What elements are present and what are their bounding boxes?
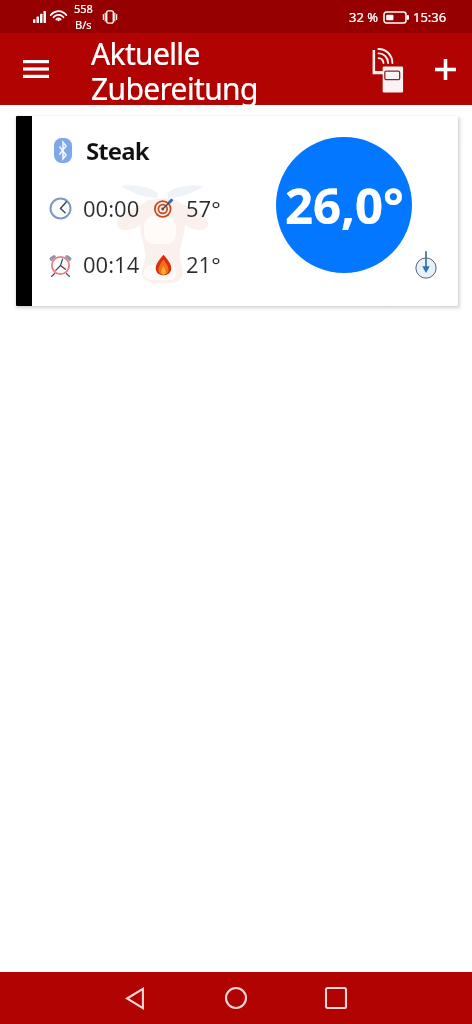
button[interactable]: Add bbox=[421, 41, 469, 97]
button[interactable]: Download bbox=[412, 249, 440, 277]
button[interactable]: Steak bbox=[16, 116, 458, 306]
staticText: 21° bbox=[186, 249, 221, 279]
staticText: Steak bbox=[86, 134, 149, 167]
staticText: 558 bbox=[74, 1, 93, 16]
staticText: B/s bbox=[75, 17, 92, 32]
staticText: 32 % bbox=[349, 8, 379, 26]
button[interactable]: Recents bbox=[312, 974, 360, 1022]
staticText: 26,0° bbox=[285, 172, 404, 239]
staticText: 00:00 bbox=[83, 193, 140, 223]
staticText: Aktuelle Zubereitung bbox=[91, 33, 352, 105]
staticText: 57° bbox=[186, 193, 221, 223]
button[interactable]: Transmitter bbox=[369, 41, 421, 97]
staticText: 15:36 bbox=[413, 8, 447, 26]
button[interactable]: Home bbox=[212, 974, 260, 1022]
button[interactable]: Back bbox=[111, 974, 159, 1022]
staticText: 00:14 bbox=[83, 249, 140, 279]
button[interactable]: Menu bbox=[12, 45, 60, 93]
